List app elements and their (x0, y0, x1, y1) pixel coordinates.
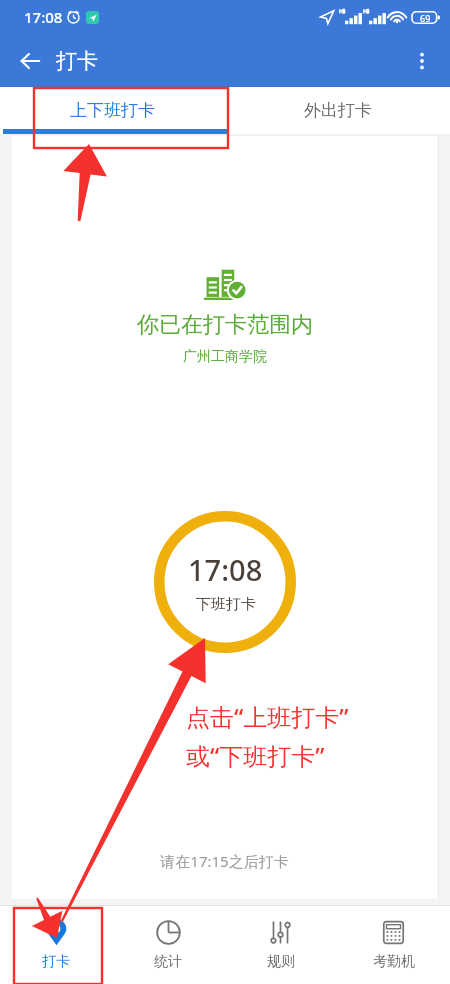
staticText: 打卡 (42, 953, 70, 971)
staticText: 69 (420, 12, 431, 24)
staticText: 打卡 (56, 48, 98, 74)
staticText: 17:08 (24, 7, 63, 27)
button[interactable]: 17:08 (154, 511, 296, 653)
staticText: 考勤机 (373, 953, 415, 971)
staticText: 规则 (267, 953, 295, 971)
button[interactable]: Back (8, 39, 52, 83)
button[interactable]: 上下班打卡 (0, 87, 225, 134)
staticText: 广州工商学院 (183, 348, 267, 366)
staticText: 请在17:15之后打卡 (160, 851, 289, 871)
staticText: 上下班打卡 (70, 100, 155, 121)
staticText: 17:08 (188, 550, 263, 589)
staticText: 或“下班打卡” (186, 739, 325, 772)
staticText: 你已在打卡范围内 (137, 311, 313, 339)
button[interactable]: 规则 (224, 906, 337, 984)
staticText: 下班打卡 (196, 595, 256, 614)
button[interactable]: 外出打卡 (225, 87, 450, 134)
staticText: 外出打卡 (304, 100, 372, 121)
button[interactable]: 考勤机 (337, 906, 450, 984)
button[interactable]: 打卡 (0, 906, 112, 984)
staticText: 统计 (154, 953, 182, 971)
button[interactable]: 统计 (112, 906, 224, 984)
button[interactable]: More options (400, 39, 444, 83)
staticText: 点击“上班打卡” (186, 700, 349, 733)
